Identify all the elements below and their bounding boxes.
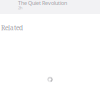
staticText: 2h <box>18 5 22 10</box>
staticText: Related <box>1 23 23 32</box>
staticText: The Quiet Revolution <box>18 0 67 7</box>
